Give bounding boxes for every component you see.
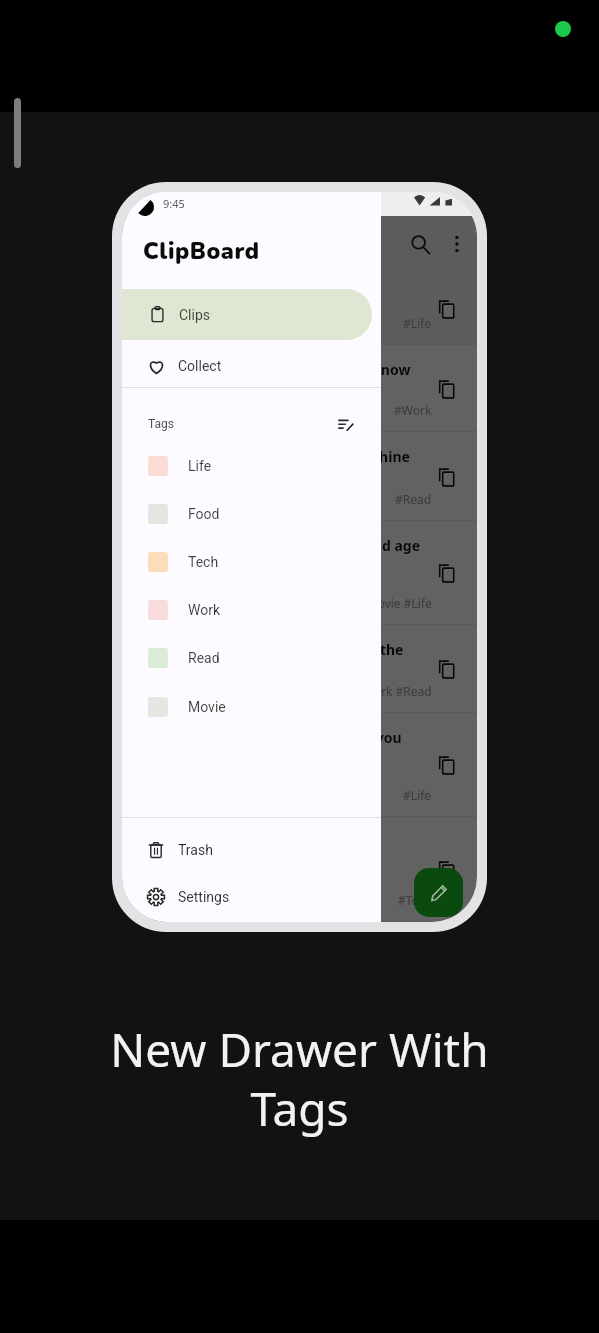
button[interactable]: Search bbox=[398, 222, 442, 266]
staticText: New Drawer With Tags bbox=[110, 1018, 489, 1140]
button[interactable]: Clips bbox=[122, 289, 372, 340]
button[interactable]: Work bbox=[122, 586, 381, 634]
button[interactable]: Collect bbox=[122, 343, 381, 389]
button[interactable]: The only one path that is made by the bbox=[122, 625, 477, 713]
staticText: #Read bbox=[395, 491, 432, 507]
staticText: Collect bbox=[178, 358, 222, 374]
button[interactable]: Edit tags bbox=[333, 412, 357, 436]
staticText: ClipBoard bbox=[143, 236, 260, 267]
staticText: #Work #Read bbox=[355, 683, 432, 699]
button[interactable]: Settings bbox=[122, 874, 381, 920]
staticText: #Life bbox=[403, 787, 432, 803]
staticText: Settings bbox=[178, 889, 230, 905]
button[interactable]: Tech bbox=[122, 538, 381, 586]
staticText: The only one path that is made by the bbox=[140, 640, 404, 659]
staticText: Life bbox=[188, 458, 212, 474]
button[interactable]: Food bbox=[122, 490, 381, 538]
staticText: Nobody in this world can escape old age … bbox=[140, 536, 421, 574]
button[interactable]: More options bbox=[435, 222, 477, 266]
staticText: Tech bbox=[188, 554, 219, 570]
staticText: Trash bbox=[178, 842, 213, 858]
staticText: Movie bbox=[188, 699, 226, 715]
button[interactable]: Keep going forward, the best of it is st… bbox=[122, 817, 477, 922]
button[interactable]: Trash bbox=[122, 827, 381, 873]
button[interactable]: Life is short; make it sweet. bbox=[122, 272, 477, 345]
staticText: #Tech bbox=[398, 892, 432, 908]
button[interactable]: Nobody in this world can escape old age … bbox=[122, 521, 477, 625]
staticText: There are some things you never know bbox=[140, 360, 411, 379]
button[interactable]: Life bbox=[122, 442, 381, 490]
button[interactable]: You already have everything that you hav… bbox=[122, 713, 477, 817]
staticText: #Work bbox=[394, 402, 432, 418]
staticText: Life is short; make it sweet. bbox=[140, 287, 332, 306]
staticText: #Movie #Life bbox=[359, 595, 432, 611]
button[interactable]: There are some things you never know bbox=[122, 345, 477, 432]
staticText: Food bbox=[188, 506, 220, 522]
button[interactable]: Read bbox=[122, 634, 381, 682]
staticText: Work bbox=[188, 602, 221, 618]
button[interactable]: New clip bbox=[414, 868, 463, 917]
staticText: Read bbox=[188, 650, 220, 666]
staticText: Clips bbox=[179, 307, 211, 323]
staticText: You already have everything that you hav… bbox=[140, 728, 402, 766]
staticText: 9:45 bbox=[163, 196, 185, 211]
staticText: It is somewhere between the sunshine and bbox=[140, 447, 432, 485]
staticText: #Life bbox=[403, 315, 432, 331]
button[interactable]: It is somewhere between the sunshine and bbox=[122, 432, 477, 521]
button[interactable]: Movie bbox=[122, 683, 381, 731]
staticText: Tags bbox=[148, 417, 174, 431]
staticText: Keep going forward, the best of it is st… bbox=[140, 832, 375, 870]
